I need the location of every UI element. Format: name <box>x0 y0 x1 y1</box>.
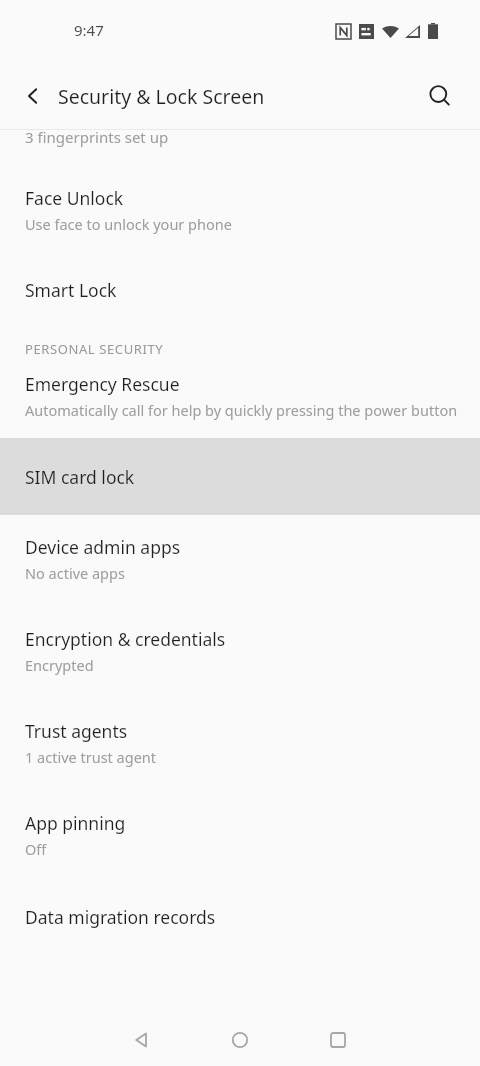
staticText: App pinning <box>25 811 126 835</box>
button[interactable]: App pinning <box>0 791 480 883</box>
button[interactable]: Smart Lock <box>0 260 480 332</box>
staticText: Use face to unlock your phone <box>25 214 232 234</box>
staticText: Trust agents <box>25 719 128 743</box>
staticText: Smart Lock <box>25 278 117 302</box>
button[interactable]: Trust agents <box>0 699 480 791</box>
button[interactable]: Device admin apps <box>0 515 480 607</box>
button[interactable]: SIM card lock <box>0 438 480 515</box>
staticText: Face Unlock <box>25 186 124 210</box>
staticText: 9:47 <box>74 20 104 40</box>
button[interactable]: Emergency Rescue <box>0 364 480 438</box>
button[interactable]: 3 fingerprints set up <box>0 130 480 160</box>
button[interactable]: Recent apps <box>314 1016 362 1064</box>
staticText: Emergency Rescue <box>25 372 180 396</box>
staticText: Security & Lock Screen <box>58 83 265 110</box>
button[interactable]: Back <box>118 1016 166 1064</box>
staticText: PERSONAL SECURITY <box>25 340 164 358</box>
staticText: 1 active trust agent <box>25 747 157 767</box>
button[interactable]: Encryption & credentials <box>0 607 480 699</box>
button[interactable]: Search <box>417 73 463 119</box>
staticText: SIM card lock <box>25 465 135 489</box>
staticText: Data migration records <box>25 905 216 929</box>
staticText: Encrypted <box>25 655 94 675</box>
staticText: Automatically call for help by quickly p… <box>25 400 458 420</box>
staticText: No active apps <box>25 563 125 583</box>
button[interactable]: Data migration records <box>0 883 480 955</box>
button[interactable]: Home <box>216 1016 264 1064</box>
staticText: Encryption & credentials <box>25 627 226 651</box>
staticText: Off <box>25 839 47 859</box>
button[interactable]: Face Unlock <box>0 160 480 260</box>
staticText: Device admin apps <box>25 535 181 559</box>
button[interactable]: Back <box>10 73 56 119</box>
staticText: 3 fingerprints set up <box>25 130 169 147</box>
